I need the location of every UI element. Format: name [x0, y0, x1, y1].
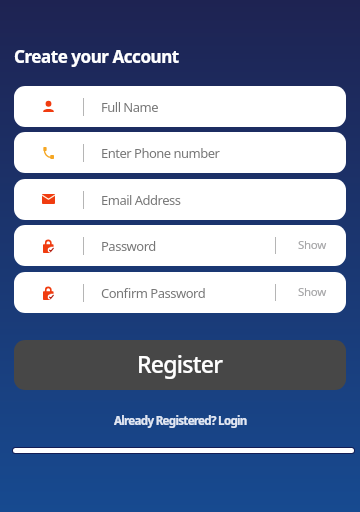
staticText: Confirm Password	[101, 284, 206, 302]
staticText: Show	[298, 237, 326, 253]
button[interactable]: Show	[276, 272, 346, 313]
button[interactable]: Password	[14, 225, 346, 266]
other: Phone	[14, 132, 83, 173]
button[interactable]: Confirm password	[14, 272, 346, 313]
button[interactable]: Email	[14, 179, 346, 220]
staticText: Enter Phone number	[101, 144, 220, 162]
button[interactable]: Phone	[14, 132, 346, 173]
staticText: Register	[137, 348, 223, 379]
staticText: Show	[298, 284, 326, 300]
button[interactable]: Show	[276, 225, 346, 266]
other: Password	[14, 225, 83, 266]
staticText: Create your Account	[14, 45, 179, 68]
button[interactable]: Already Registered? Login	[108, 410, 253, 432]
staticText: Already Registered? Login	[114, 413, 247, 429]
staticText: Email Address	[101, 191, 181, 209]
other: Email	[14, 179, 83, 220]
other: Name	[14, 86, 83, 127]
staticText: Full Name	[101, 98, 159, 116]
button[interactable]: Register	[14, 340, 346, 390]
other: Confirm password	[14, 272, 83, 313]
button[interactable]: Name	[14, 86, 346, 127]
staticText: Password	[101, 237, 156, 255]
